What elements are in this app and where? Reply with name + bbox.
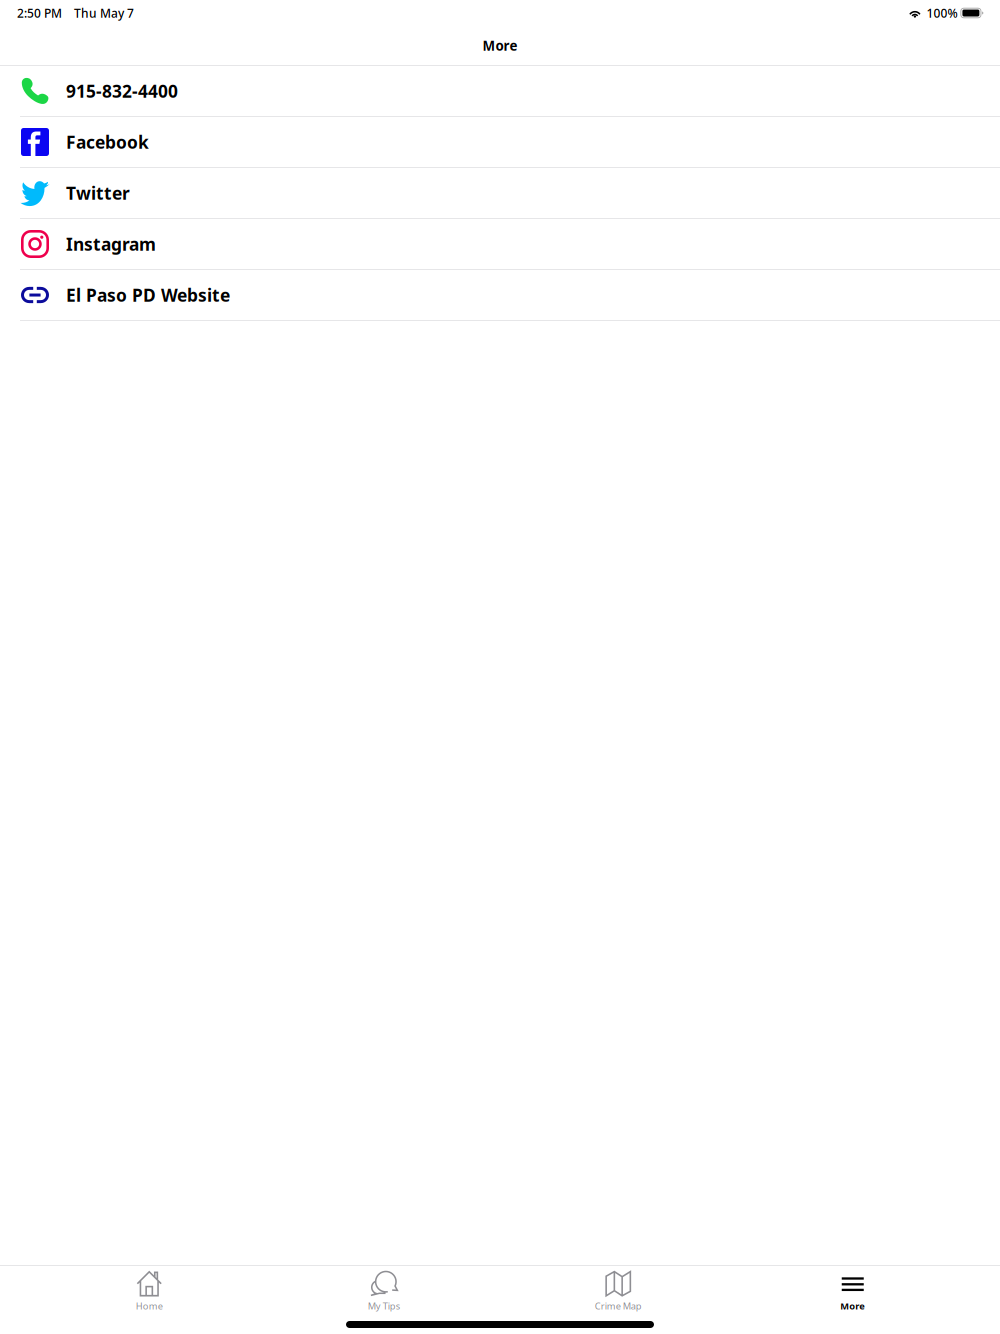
button[interactable]: 915-832-4400: [0, 66, 1000, 117]
button[interactable]: Facebook: [0, 117, 1000, 168]
button[interactable]: Crime Map: [501, 1266, 735, 1314]
staticText: 2:50 PM: [17, 5, 62, 21]
button[interactable]: My Tips: [266, 1266, 501, 1314]
button[interactable]: Twitter: [0, 168, 1000, 219]
staticText: Home: [136, 1300, 163, 1312]
staticText: My Tips: [368, 1300, 400, 1312]
staticText: Twitter: [66, 181, 130, 204]
staticText: Thu May 7: [74, 5, 134, 21]
button[interactable]: Home: [32, 1266, 266, 1314]
button[interactable]: El Paso PD Website: [0, 270, 1000, 321]
staticText: More: [482, 37, 517, 54]
staticText: El Paso PD Website: [66, 283, 230, 306]
staticText: 915-832-4400: [66, 79, 178, 102]
staticText: Instagram: [66, 232, 156, 255]
staticText: Crime Map: [595, 1300, 642, 1312]
button[interactable]: Instagram: [0, 219, 1000, 270]
staticText: 100%: [926, 5, 957, 21]
staticText: More: [840, 1300, 865, 1312]
button[interactable]: More: [735, 1266, 970, 1314]
staticText: Facebook: [66, 130, 149, 153]
